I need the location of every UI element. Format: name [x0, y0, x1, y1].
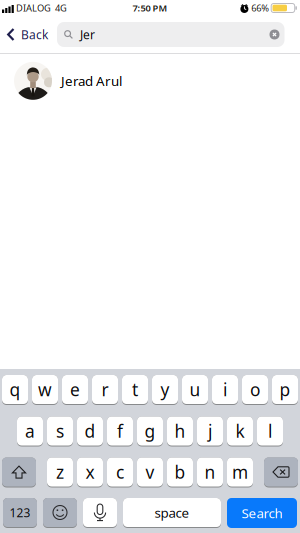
staticText: h	[174, 419, 185, 442]
staticText: y	[160, 378, 169, 401]
staticText: i	[223, 378, 227, 401]
button[interactable]: Numbers	[3, 498, 37, 528]
button[interactable]: f	[107, 416, 133, 446]
button[interactable]: e	[62, 375, 88, 405]
button[interactable]: i	[212, 375, 238, 405]
button[interactable]: space	[123, 498, 221, 528]
staticText: Back	[21, 26, 48, 42]
staticText: 66%	[251, 2, 269, 14]
staticText: u	[189, 378, 200, 401]
staticText: r	[101, 378, 108, 401]
button[interactable]: j	[197, 416, 223, 446]
staticText: c	[116, 460, 124, 483]
button[interactable]: c	[107, 457, 133, 487]
staticText: w	[38, 378, 52, 401]
staticText: Search	[241, 504, 282, 522]
staticText: Jerad Arul	[61, 72, 122, 90]
button[interactable]: w	[32, 375, 58, 405]
button[interactable]: s	[47, 416, 73, 446]
button[interactable]: Dictation	[83, 498, 117, 528]
staticText: v	[145, 460, 154, 483]
button[interactable]: y	[152, 375, 178, 405]
button[interactable]: a	[17, 416, 43, 446]
staticText: x	[85, 460, 94, 483]
button[interactable]: v	[137, 457, 163, 487]
button[interactable]: o	[242, 375, 268, 405]
staticText: g	[144, 419, 155, 442]
button[interactable]: Jerad Arul	[0, 54, 300, 108]
button[interactable]: m	[227, 457, 253, 487]
staticText: 7:50 PM	[132, 2, 167, 14]
button[interactable]: Back	[0, 26, 48, 42]
staticText: n	[204, 460, 215, 483]
staticText: z	[56, 460, 64, 483]
button[interactable]: d	[77, 416, 103, 446]
staticText: m	[232, 460, 248, 483]
button[interactable]: h	[167, 416, 193, 446]
button[interactable]: Search	[227, 498, 297, 528]
button[interactable]: Shift	[2, 457, 36, 487]
staticText: space	[154, 504, 189, 521]
staticText: j	[208, 419, 212, 442]
button[interactable]: Delete	[264, 457, 298, 487]
staticText: k	[235, 419, 244, 442]
button[interactable]: n	[197, 457, 223, 487]
button[interactable]: Clear text	[269, 29, 284, 39]
button[interactable]: u	[182, 375, 208, 405]
button[interactable]: p	[272, 375, 298, 405]
staticText: b	[174, 460, 185, 483]
button[interactable]: g	[137, 416, 163, 446]
button[interactable]: b	[167, 457, 193, 487]
staticText: e	[70, 378, 80, 401]
staticText: 123	[9, 504, 30, 520]
button[interactable]: z	[47, 457, 73, 487]
staticText: 4G	[55, 2, 67, 14]
button[interactable]: Search	[57, 22, 284, 47]
staticText: l	[268, 419, 272, 442]
staticText: s	[56, 419, 64, 442]
staticText: DIALOG	[16, 2, 51, 14]
button[interactable]: r	[92, 375, 118, 405]
button[interactable]: q	[2, 375, 28, 405]
staticText: t	[132, 378, 138, 401]
staticText: o	[250, 378, 260, 401]
staticText: f	[117, 419, 123, 442]
staticText: a	[25, 419, 35, 442]
staticText: q	[9, 378, 20, 401]
button[interactable]: k	[227, 416, 253, 446]
button[interactable]: Emoji	[43, 498, 77, 528]
button[interactable]: x	[77, 457, 103, 487]
button[interactable]: t	[122, 375, 148, 405]
button[interactable]: l	[257, 416, 283, 446]
staticText: Jer	[80, 26, 95, 42]
staticText: p	[279, 378, 290, 401]
staticText: d	[84, 419, 95, 442]
